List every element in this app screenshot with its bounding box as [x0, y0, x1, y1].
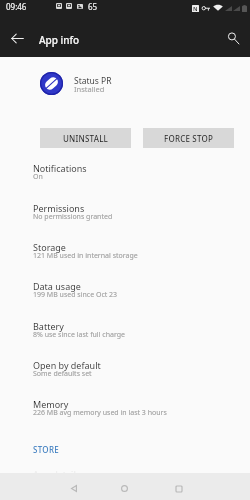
button[interactable]: Data usage [0, 277, 250, 316]
button[interactable]: Search [222, 27, 245, 50]
staticText: Storage [33, 241, 66, 253]
staticText: Open by default [33, 359, 101, 371]
staticText: 121 MB used in internal storage [33, 251, 138, 261]
staticText: UNINSTALL [63, 133, 109, 144]
staticText: 226 MB avg memory used in last 3 hours [33, 408, 167, 418]
button[interactable]: Back [6, 27, 29, 50]
staticText: N [193, 5, 198, 12]
staticText: Data usage [33, 280, 81, 292]
button[interactable]: Notifications [0, 159, 250, 198]
staticText: No permissions granted [33, 212, 113, 222]
button[interactable]: Open by default [0, 356, 250, 395]
staticText: STORE [33, 444, 60, 455]
staticText: 8% use since last full charge [33, 330, 125, 340]
staticText: 09:46 [6, 1, 27, 12]
staticText: Some defaults set [33, 369, 92, 379]
button[interactable]: Battery [0, 317, 250, 356]
button[interactable]: Storage [0, 238, 250, 277]
staticText: App info [39, 33, 80, 47]
staticText: 65 [88, 1, 98, 12]
staticText: Memory [33, 398, 69, 410]
staticText: Installed [74, 84, 105, 94]
staticText: 199 MB used since Oct 23 [33, 290, 118, 300]
button[interactable]: Back [62, 477, 85, 500]
staticText: FORCE STOP [164, 133, 214, 144]
button[interactable]: FORCE STOP [143, 128, 234, 148]
button[interactable]: STORE [28, 440, 68, 458]
staticText: App details [33, 468, 81, 480]
staticText: Permissions [33, 202, 85, 214]
staticText: Battery [33, 320, 64, 332]
button[interactable]: UNINSTALL [40, 128, 131, 148]
button[interactable]: Recent apps [167, 477, 190, 500]
button[interactable]: Home [113, 477, 136, 500]
staticText: On [33, 172, 43, 182]
staticText: Status PR [74, 75, 112, 87]
staticText: Notifications [33, 162, 87, 174]
button[interactable]: Permissions [0, 199, 250, 238]
button[interactable]: Memory [0, 395, 250, 434]
